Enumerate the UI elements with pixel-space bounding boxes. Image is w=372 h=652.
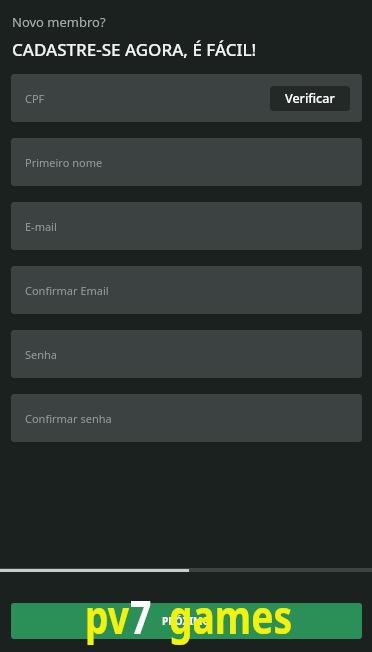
button[interactable]: Primeiro nome	[11, 138, 362, 186]
staticText: Novo membro?	[12, 13, 106, 31]
staticText: E-mail	[25, 219, 57, 234]
staticText: pv	[85, 585, 130, 648]
staticText: CADASTRE-SE AGORA, É FÁCIL!	[12, 38, 257, 61]
button[interactable]: PRÓXIMO	[11, 603, 362, 639]
staticText: games	[169, 585, 293, 648]
staticText: Confirmar senha	[25, 411, 112, 426]
button[interactable]: Confirmar Email	[11, 266, 362, 314]
staticText: Confirmar Email	[25, 283, 109, 298]
button[interactable]: Senha	[11, 330, 362, 378]
staticText: CPF	[25, 91, 45, 106]
button[interactable]: CPF	[11, 74, 362, 122]
button[interactable]: Verificar	[270, 86, 350, 111]
staticText: PRÓXIMO	[162, 614, 211, 628]
staticText: Senha	[25, 347, 58, 362]
staticText: 7	[130, 585, 152, 648]
button[interactable]: Confirmar senha	[11, 394, 362, 442]
staticText: Verificar	[285, 90, 335, 107]
button[interactable]: E-mail	[11, 202, 362, 250]
staticText: Primeiro nome	[25, 155, 103, 170]
